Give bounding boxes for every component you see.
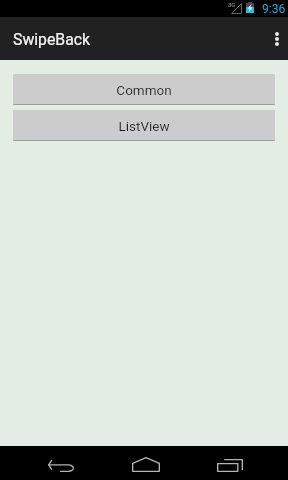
staticText: Common [116,82,172,98]
button[interactable]: Back [21,446,101,480]
staticText: SwipeBack [13,30,91,49]
button[interactable]: Recent apps [190,446,270,480]
button[interactable]: Home [106,446,186,480]
button[interactable]: Common [13,74,275,105]
staticText: ListView [118,118,170,134]
staticText: 3G [228,1,236,8]
staticText: 9:36 [262,2,286,16]
button[interactable]: ListView [13,110,275,141]
button[interactable]: More options [265,17,288,60]
